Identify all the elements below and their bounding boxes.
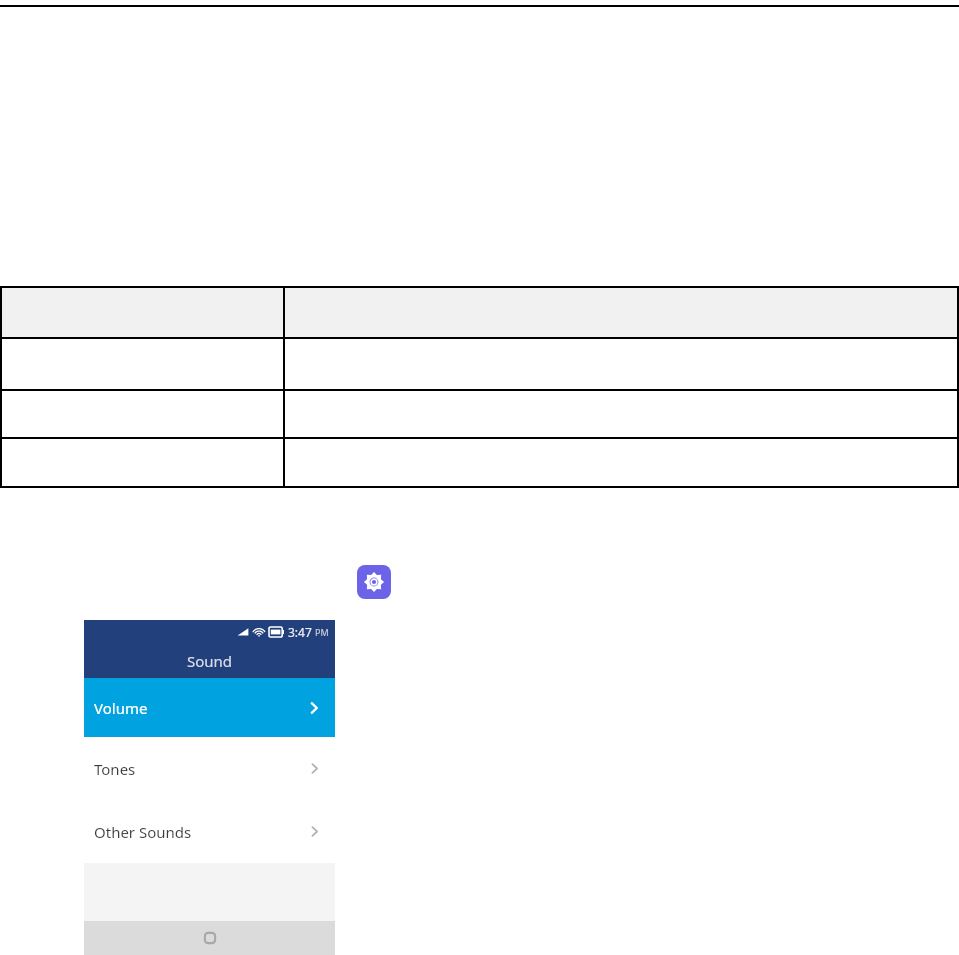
button[interactable]: Settings [357,565,391,599]
staticText: PM [315,626,329,638]
button[interactable]: Other Sounds [84,800,335,863]
staticText: Tones [94,759,136,779]
button[interactable]: Home [202,930,218,946]
staticText: Volume [94,698,148,718]
button[interactable]: Tones [84,737,335,800]
staticText: 3:47 [288,624,312,640]
staticText: Other Sounds [94,822,192,842]
button[interactable]: Volume [84,678,335,737]
staticText: Sound [187,651,233,671]
